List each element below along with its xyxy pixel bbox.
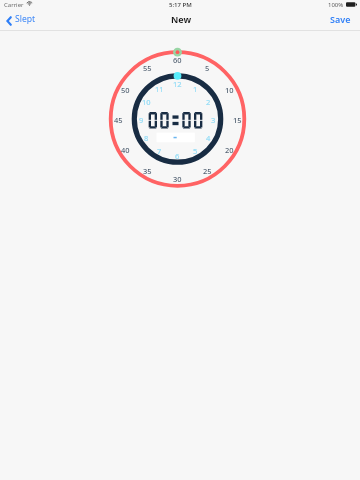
staticText: 9 (139, 115, 144, 125)
staticText: 30 (173, 174, 182, 184)
button[interactable]: Slept (0, 11, 40, 27)
staticText: 50 (121, 85, 130, 95)
staticText: 4 (206, 133, 211, 143)
staticText: Slept (15, 13, 36, 25)
staticText: 1 (193, 84, 198, 94)
staticText: 25 (203, 166, 212, 176)
staticText: 8 (144, 133, 149, 143)
staticText: 40 (121, 145, 130, 155)
button[interactable]: Duration picker (0, 0, 360, 480)
staticText: 6 (175, 151, 180, 161)
staticText: 100% (328, 1, 344, 9)
staticText: 35 (143, 166, 152, 176)
staticText: 12 (173, 79, 182, 89)
staticText: 55 (143, 63, 152, 73)
staticText: 2 (206, 97, 211, 107)
staticText: 15 (233, 115, 242, 125)
staticText: Save (330, 13, 351, 25)
staticText: 10 (225, 85, 234, 95)
button[interactable]: Save (326, 11, 360, 27)
staticText: 3 (211, 115, 216, 125)
staticText: 60 (173, 55, 182, 65)
staticText: 7 (157, 146, 162, 156)
staticText: 10 (142, 97, 151, 107)
staticText: 5 (193, 146, 198, 156)
staticText: 5 (205, 63, 210, 73)
staticText: New (171, 13, 192, 25)
staticText: 45 (114, 115, 123, 125)
staticText: Carrier (4, 1, 24, 9)
staticText: 11 (155, 84, 164, 94)
staticText: 20 (225, 145, 234, 155)
staticText: 5:17 PM (169, 1, 192, 9)
